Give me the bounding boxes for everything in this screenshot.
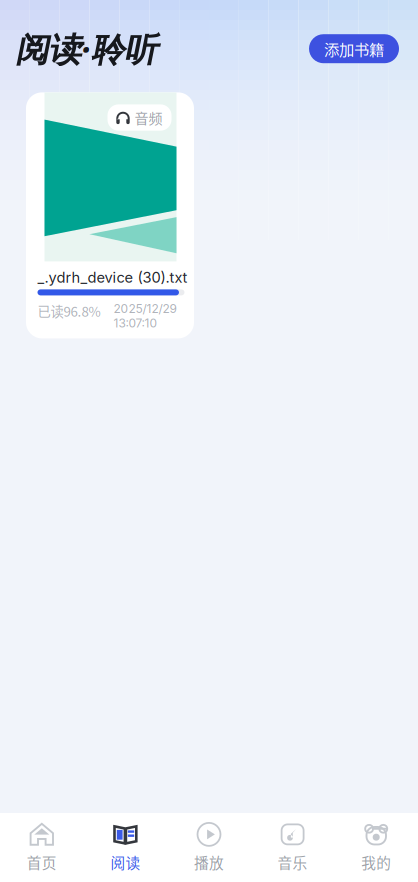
staticText: 首页	[27, 851, 57, 873]
button[interactable]: 音乐	[251, 809, 334, 882]
button[interactable]: 我的	[334, 809, 418, 882]
button[interactable]: 添加书籍	[309, 34, 399, 63]
staticText: 音乐	[278, 851, 308, 873]
button[interactable]: 音频	[26, 92, 194, 338]
button[interactable]: 播放	[167, 809, 251, 882]
staticText: 已读96.8%	[37, 301, 100, 321]
staticText: 添加书籍	[324, 38, 384, 60]
button[interactable]: 阅读	[84, 809, 167, 882]
staticText: 音频	[134, 107, 162, 128]
staticText: _.ydrh_device (30).txt	[37, 268, 187, 286]
staticText: 播放	[194, 851, 224, 873]
staticText: 2025/12/29 13:07:10	[113, 301, 176, 330]
button[interactable]: 首页	[0, 809, 84, 882]
staticText: 阅读	[110, 851, 140, 873]
staticText: 阅读·聆听	[15, 26, 157, 71]
staticText: 我的	[361, 851, 391, 873]
